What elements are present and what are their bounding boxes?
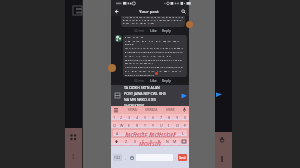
button[interactable]: J — [163, 130, 171, 136]
staticText: MOHSIN — [139, 140, 161, 147]
staticText: 5 — [144, 115, 147, 120]
button[interactable]: 4 — [133, 114, 141, 120]
button[interactable]: H — [155, 130, 163, 136]
button[interactable]: 6 — [149, 114, 157, 120]
button[interactable]: K — [171, 130, 179, 136]
staticText: , — [125, 155, 126, 160]
button[interactable]: E — [125, 122, 133, 128]
button[interactable]: V — [147, 138, 155, 145]
button[interactable]: D — [131, 130, 139, 136]
staticText: 1 — [71, 152, 76, 162]
button[interactable] — [111, 138, 122, 145]
button[interactable]: Reply — [162, 29, 171, 33]
staticText: NA MN NRKO 4 IES — [124, 97, 156, 102]
staticText: U — [160, 123, 163, 128]
staticText: M — [173, 139, 177, 144]
staticText: ?123 — [114, 156, 121, 160]
staticText: 0 — [184, 115, 187, 120]
staticText: A — [116, 131, 119, 136]
staticText: Q — [113, 123, 116, 128]
button[interactable]: L — [179, 130, 187, 136]
button[interactable]: Like — [150, 79, 157, 83]
staticText: F — [142, 131, 144, 136]
button[interactable]: Gallery — [114, 92, 121, 99]
staticText: 1 — [113, 115, 116, 120]
staticText: E — [128, 123, 130, 128]
button[interactable]: 9 — [173, 114, 181, 120]
button[interactable]: Like — [150, 29, 157, 33]
staticText: H — [158, 131, 161, 136]
staticText: W — [120, 123, 124, 128]
staticText: . — [175, 155, 176, 160]
staticText: 8 — [168, 115, 171, 120]
staticText: 3 — [128, 115, 131, 120]
button[interactable]: W — [118, 122, 125, 128]
staticText: SHOR KRINI — [124, 103, 145, 106]
button[interactable]: B — [155, 138, 163, 145]
staticText: 32 min — [134, 79, 145, 83]
button[interactable]: I — [165, 122, 173, 128]
staticText: Your post — [139, 9, 159, 15]
button[interactable]: M — [171, 138, 179, 145]
button[interactable]: 7 — [157, 114, 165, 120]
button[interactable]: ?123 — [113, 154, 122, 161]
button[interactable]: O — [173, 122, 181, 128]
button[interactable]: 1 — [111, 114, 118, 120]
button[interactable]: T — [141, 122, 149, 128]
staticText: R — [136, 123, 139, 128]
staticText: I — [168, 123, 170, 128]
button[interactable]: A — [113, 130, 122, 136]
staticText: L — [182, 131, 184, 136]
staticText: C — [142, 139, 145, 144]
button[interactable] — [123, 35, 187, 77]
staticText: Y — [152, 123, 155, 128]
staticText: KRWATA — [145, 108, 158, 112]
staticText: 7 — [160, 115, 163, 120]
button[interactable]: Send — [178, 154, 187, 161]
staticText: KRWE — [166, 108, 175, 112]
button[interactable]: R — [133, 122, 141, 128]
button[interactable]: X — [131, 138, 139, 145]
staticText: J — [167, 131, 168, 136]
staticText: G — [150, 131, 153, 136]
staticText: V — [150, 139, 153, 144]
staticText: K — [174, 131, 177, 136]
staticText: O — [176, 123, 179, 128]
button[interactable]: U — [157, 122, 165, 128]
staticText: T — [144, 123, 146, 128]
button[interactable]: N — [163, 138, 171, 145]
button[interactable] — [121, 16, 185, 27]
button[interactable]: 3 — [125, 114, 133, 120]
button[interactable]: Send — [179, 91, 188, 100]
button[interactable]: Reply — [162, 79, 171, 83]
staticText: TA DZIKH SKTN ALAN — [124, 85, 160, 90]
button[interactable]: Z — [122, 138, 131, 145]
button[interactable]: Back — [111, 7, 121, 16]
staticText: 2 — [120, 115, 123, 120]
button[interactable]: F — [139, 130, 147, 136]
staticText: MOHSIF MOHSON — [125, 131, 176, 139]
button[interactable]: 2 — [118, 114, 125, 120]
staticText: Send — [179, 156, 186, 160]
button[interactable]: 8 — [165, 114, 173, 120]
staticText: X — [134, 139, 137, 144]
button[interactable]: 0 — [181, 114, 189, 120]
button[interactable]: Voice input — [183, 107, 186, 112]
staticText: S — [126, 131, 128, 136]
button[interactable]: S — [122, 130, 131, 136]
button[interactable] — [179, 138, 189, 145]
staticText: 6 — [152, 115, 155, 120]
staticText: KRWA — [128, 108, 137, 112]
button[interactable]: Search — [178, 7, 188, 16]
button[interactable]: Q — [111, 122, 118, 128]
button[interactable]: Keyboard settings — [114, 108, 118, 112]
button[interactable]: P — [181, 122, 189, 128]
button[interactable]: C — [139, 138, 147, 145]
staticText: D — [134, 131, 137, 136]
staticText: B — [158, 139, 161, 144]
button[interactable]: Y — [149, 122, 157, 128]
button[interactable]: 5 — [141, 114, 149, 120]
button[interactable]: G — [147, 130, 155, 136]
button[interactable]: Emoji — [129, 155, 134, 160]
